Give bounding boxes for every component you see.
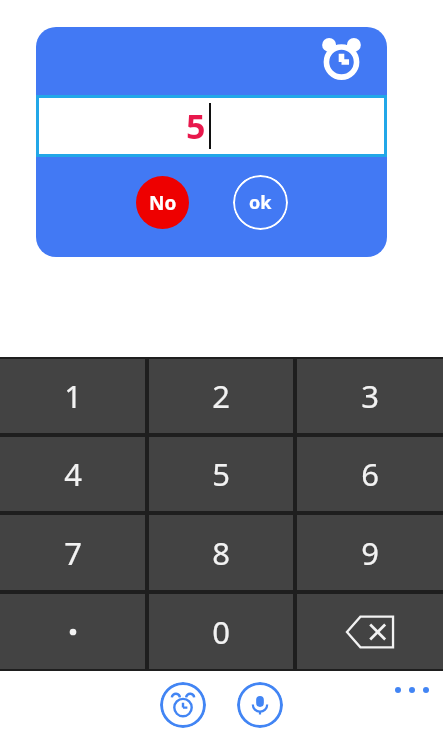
staticText: 0 [212,611,230,653]
staticText: ok [249,190,272,215]
button[interactable]: 8 [149,515,293,590]
button[interactable]: Voice input [237,682,283,728]
button[interactable]: 4 [0,437,145,511]
button[interactable]: Alarm [160,682,206,728]
staticText: 9 [361,532,379,574]
staticText: 7 [64,532,82,574]
button[interactable]: 0 [149,594,293,669]
staticText: 6 [361,453,379,495]
staticText: 1 [64,375,82,417]
button[interactable]: 7 [0,515,145,590]
button[interactable]: 5 [149,437,293,511]
staticText: 4 [64,453,82,495]
button[interactable]: More options [392,684,432,696]
button[interactable]: 6 [297,437,443,511]
button[interactable]: 5 [39,98,384,154]
staticText: 3 [361,375,379,417]
button[interactable]: Backspace [297,594,443,669]
staticText: 5 [186,103,206,149]
staticText: 5 [212,453,230,495]
button[interactable]: 2 [149,359,293,433]
staticText: 2 [212,375,230,417]
button[interactable]: 3 [297,359,443,433]
staticText: No [149,190,177,216]
button[interactable]: Alarm [315,31,367,83]
button[interactable]: ok [233,175,288,230]
button[interactable]: 9 [297,515,443,590]
button[interactable]: No [136,176,189,229]
staticText: 8 [212,532,230,574]
button[interactable] [0,594,145,669]
button[interactable]: 1 [0,359,145,433]
